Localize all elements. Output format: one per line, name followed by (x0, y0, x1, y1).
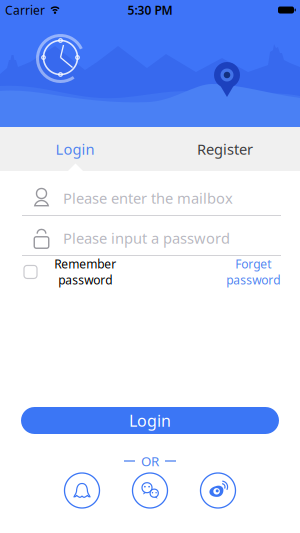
button[interactable]: Please input a password (0, 216, 300, 255)
button[interactable]: Login with WeChat (132, 473, 167, 508)
button[interactable]: Register (150, 127, 300, 171)
staticText: Register (197, 139, 253, 159)
button[interactable]: Login with Weibo (200, 473, 235, 508)
staticText: Please input a password (63, 228, 230, 248)
staticText: Forget password (226, 256, 280, 288)
staticText: Carrier (5, 2, 45, 18)
staticText: Remember password (54, 256, 116, 288)
button[interactable]: Login (21, 407, 279, 434)
staticText: Login (55, 139, 94, 159)
button[interactable]: Forget password (226, 256, 280, 288)
button[interactable]: Login (0, 127, 150, 171)
button[interactable]: Login with QQ (64, 473, 99, 508)
button[interactable]: Remember password (24, 256, 116, 288)
staticText: Please enter the mailbox (63, 188, 233, 208)
staticText: Login (129, 410, 171, 431)
staticText: OR (141, 452, 159, 470)
button[interactable]: Please enter the mailbox (0, 171, 300, 215)
staticText: 5:30 PM (127, 2, 172, 18)
